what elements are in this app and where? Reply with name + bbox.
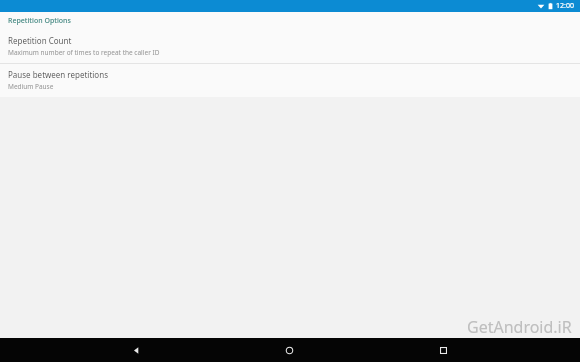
- button[interactable]: Pause between repetitions: [0, 64, 580, 97]
- staticText: Maximum number of times to repeat the ca…: [8, 48, 160, 57]
- button[interactable]: Repetition Count: [0, 30, 580, 63]
- button[interactable]: Recent apps: [426, 338, 460, 362]
- staticText: Medium Pause: [8, 82, 54, 91]
- staticText: 12:00: [556, 1, 574, 11]
- staticText: GetAndroid.iR: [467, 316, 572, 338]
- staticText: Repetition Options: [8, 16, 71, 26]
- staticText: Repetition Count: [8, 35, 72, 46]
- staticText: Pause between repetitions: [8, 69, 108, 80]
- button[interactable]: Back: [119, 338, 153, 362]
- button[interactable]: Home: [272, 338, 306, 362]
